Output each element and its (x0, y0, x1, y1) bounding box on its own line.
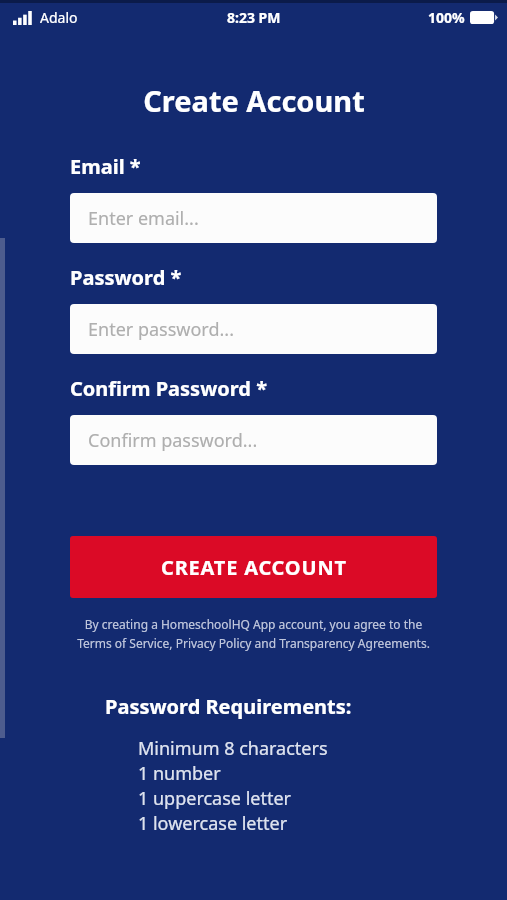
staticText: Enter password... (88, 317, 234, 342)
staticText: Adalo (40, 8, 78, 27)
staticText: Enter email... (88, 206, 199, 231)
staticText: Create Account (143, 81, 365, 120)
staticText: Minimum 8 characters (138, 736, 328, 761)
staticText: Confirm Password * (70, 375, 267, 402)
staticText: 1 lowercase letter (138, 811, 288, 836)
staticText: 100% (428, 8, 465, 27)
staticText: 8:23 PM (227, 8, 281, 27)
button[interactable]: Confirm password... (70, 415, 437, 465)
staticText: 1 number (138, 761, 221, 786)
button[interactable]: CREATE ACCOUNT (70, 536, 437, 598)
staticText: By creating a HomeschoolHQ App account, … (70, 616, 437, 651)
staticText: Email * (70, 153, 141, 180)
button[interactable]: Enter password... (70, 304, 437, 354)
staticText: Confirm password... (88, 428, 258, 453)
button[interactable]: Enter email... (70, 193, 437, 243)
staticText: CREATE ACCOUNT (161, 554, 347, 581)
staticText: Password Requirements: (105, 693, 352, 720)
staticText: 1 uppercase letter (138, 786, 292, 811)
staticText: Password * (70, 264, 182, 291)
